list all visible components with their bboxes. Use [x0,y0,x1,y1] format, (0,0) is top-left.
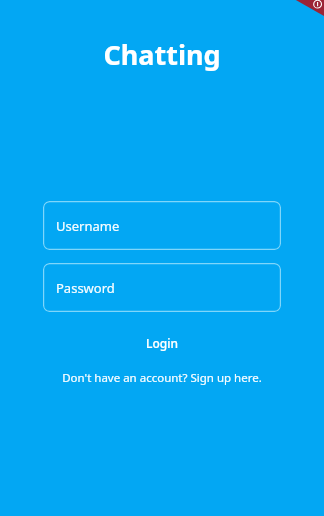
staticText: Chatting [103,36,221,73]
button[interactable]: Don't have an account? Sign up here. [0,367,324,389]
button[interactable]: Debug badge [292,0,324,26]
staticText: Username [56,217,120,235]
button[interactable]: Password field [43,263,281,312]
staticText: Don't have an account? Sign up here. [62,370,262,386]
staticText: Password [56,279,115,297]
button[interactable]: Login [0,326,324,360]
staticText: Login [146,335,178,351]
button[interactable]: Username field [43,201,281,250]
